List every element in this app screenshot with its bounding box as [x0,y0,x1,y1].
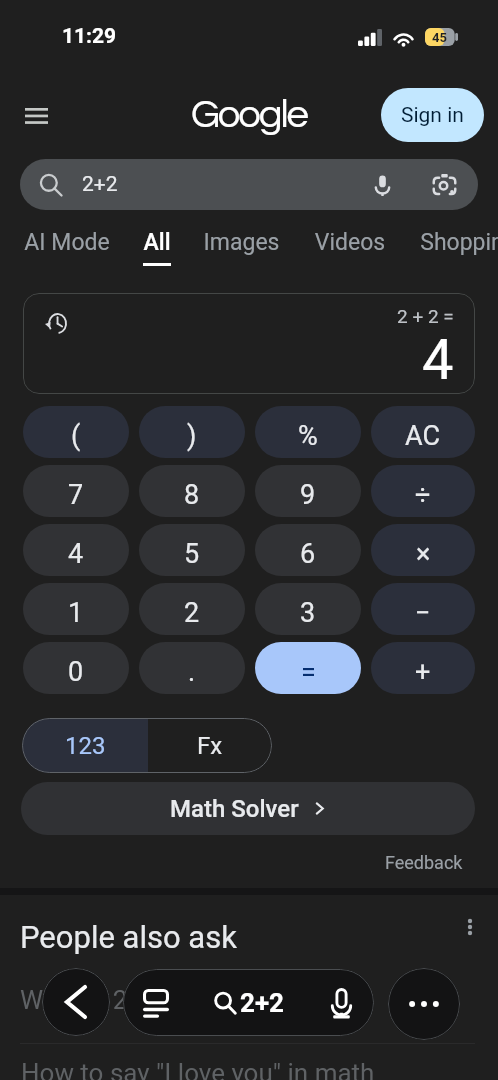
button[interactable]: Sign in [381,88,484,142]
staticText: Images [201,229,282,256]
button[interactable]: Feedback [385,852,463,873]
button[interactable]: How to say "I love you" in math [21,1058,375,1080]
button[interactable]: Fx [148,718,272,773]
staticText: + [415,656,431,688]
staticText: 5 [184,538,200,570]
button[interactable]: What is 2+2 in binary? [20,985,274,1015]
button[interactable]: AC [371,406,475,458]
button[interactable]: 5 [139,524,245,576]
staticText: ) [187,420,197,452]
button[interactable]: More options [388,968,460,1040]
staticText: 9 [300,479,316,511]
button[interactable]: 0 [23,642,129,694]
staticText: = [301,656,316,688]
staticText: 2 [184,597,200,629]
staticText: ( [71,420,81,452]
staticText: 1 [68,597,84,629]
button[interactable]: 2+2 [179,969,318,1036]
staticText: × [416,538,431,570]
staticText: Sign in [401,103,464,128]
staticText: Google [191,94,307,135]
button[interactable]: AI Mode [21,229,113,266]
button[interactable]: ) [139,406,245,458]
staticText: − [415,597,431,629]
button[interactable]: ( [23,406,129,458]
staticText: Fx [197,732,223,760]
button[interactable]: + [371,642,475,694]
button[interactable]: . [139,642,245,694]
staticText: 8 [184,479,200,511]
staticText: 4 [68,538,84,570]
staticText: 11:29 [62,24,117,49]
staticText: Math Solver [170,795,299,823]
button[interactable]: Search by image [426,167,462,203]
button[interactable]: Discover [133,980,179,1026]
staticText: All [143,229,171,256]
other: Search history [45,312,67,334]
button[interactable]: 1 [23,583,129,635]
button[interactable]: 6 [255,524,361,576]
staticText: 2 + 2 = [397,305,454,327]
staticText: 7 [68,479,84,511]
staticText: AC [405,420,441,452]
button[interactable]: 4 [23,524,129,576]
button[interactable]: Search by voice [364,167,400,203]
button[interactable]: Images [201,229,282,266]
staticText: 6 [300,538,316,570]
button[interactable]: 8 [139,465,245,517]
staticText: 45 [432,30,447,45]
button[interactable]: Back [42,968,110,1036]
button[interactable]: All [143,229,171,266]
button[interactable]: 3 [255,583,361,635]
button[interactable]: 9 [255,465,361,517]
button[interactable]: Math Solver [21,782,475,835]
button[interactable]: = [255,642,361,694]
staticText: ÷ [415,479,431,511]
staticText: 4 [422,327,454,393]
staticText: . [188,656,196,688]
staticText: 123 [65,732,106,760]
staticText: 2+2 [82,172,118,197]
button[interactable]: 2+2 [20,159,478,210]
staticText: Shopping [418,229,498,256]
button[interactable]: Search by voice [318,980,364,1026]
button[interactable]: − [371,583,475,635]
staticText: 2+2 [240,988,285,1018]
staticText: 3 [300,597,316,629]
button[interactable]: % [255,406,361,458]
button[interactable]: Videos [312,229,388,266]
button[interactable]: Shopping [418,229,498,266]
staticText: AI Mode [21,229,113,256]
button[interactable]: ÷ [371,465,475,517]
button[interactable]: × [371,524,475,576]
staticText: 0 [68,656,84,688]
staticText: People also ask [20,919,237,955]
button[interactable]: 7 [23,465,129,517]
staticText: Videos [312,229,388,256]
button[interactable]: Menu [12,91,60,139]
button[interactable]: 123 [22,718,148,773]
staticText: % [298,420,318,452]
button[interactable]: About this result [455,912,484,941]
button[interactable]: 2 [139,583,245,635]
button[interactable]: Search history [23,293,475,394]
